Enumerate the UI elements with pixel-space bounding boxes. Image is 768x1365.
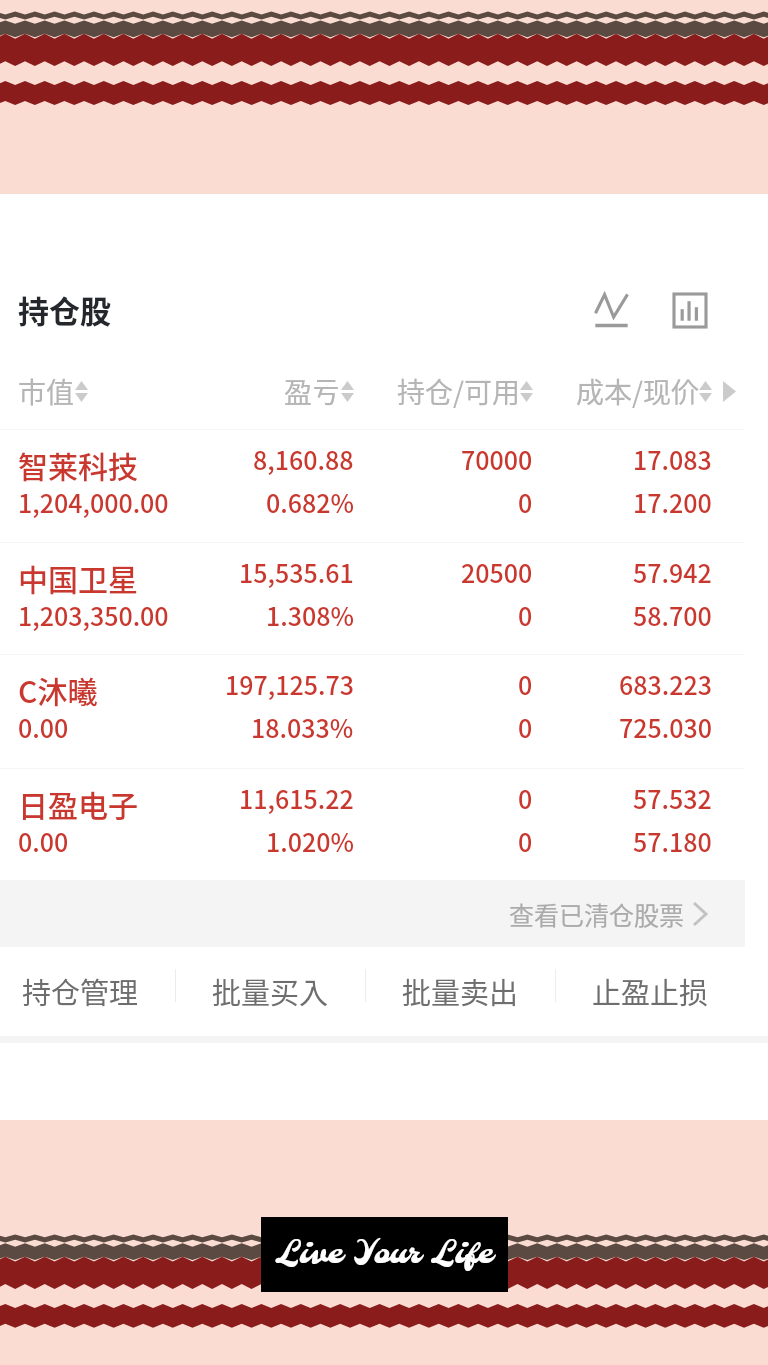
staticText: 1,203,350.00	[18, 597, 169, 633]
staticText: 1.020%	[266, 823, 354, 859]
staticText: 8,160.88	[253, 441, 354, 477]
staticText: 0	[518, 597, 533, 633]
staticText: 0.00	[18, 823, 69, 859]
staticText: 57.942	[633, 554, 712, 590]
staticText: 0	[518, 780, 533, 816]
staticText: 20500	[461, 554, 533, 590]
staticText: 57.180	[633, 823, 712, 859]
staticText: 智莱科技	[18, 443, 138, 486]
staticText: 0	[518, 709, 533, 745]
staticText: 725.030	[619, 709, 712, 745]
staticText: 查看已清仓股票	[509, 896, 685, 932]
staticText: 18.033%	[251, 709, 354, 745]
staticText: 批量买入	[212, 970, 329, 1012]
staticText: C沐曦	[18, 668, 98, 711]
button[interactable]: 日盈电子	[0, 768, 745, 881]
staticText: 197,125.73	[225, 666, 354, 702]
button[interactable]: 批量买入	[175, 946, 365, 1036]
staticText: 11,615.22	[239, 780, 354, 816]
staticText: 57.532	[633, 780, 712, 816]
staticText: 批量卖出	[402, 970, 519, 1012]
staticText: 持仓管理	[22, 970, 139, 1012]
staticText: 市值	[18, 371, 75, 412]
staticText: 58.700	[633, 597, 712, 633]
button[interactable]: 中国卫星	[0, 542, 745, 655]
button[interactable]: 查看已清仓股票	[0, 880, 745, 947]
button[interactable]: Bar chart	[657, 278, 722, 342]
button[interactable]: Trend chart	[579, 278, 644, 342]
staticText: 683.223	[619, 666, 712, 702]
staticText: 17.200	[633, 484, 712, 520]
button[interactable]: 止盈止损	[555, 946, 745, 1036]
staticText: 1.308%	[266, 597, 354, 633]
staticText: 0	[518, 823, 533, 859]
staticText: 持仓股	[18, 287, 111, 332]
button[interactable]: C沐曦	[0, 654, 745, 767]
staticText: 0	[518, 666, 533, 702]
staticText: 0	[518, 484, 533, 520]
button[interactable]: 批量卖出	[365, 946, 555, 1036]
button[interactable]: 持仓管理	[0, 946, 175, 1036]
button[interactable]: 智莱科技	[0, 429, 745, 542]
staticText: 0.00	[18, 709, 69, 745]
staticText: 15,535.61	[239, 554, 354, 590]
staticText: Live Your Life	[276, 1235, 493, 1274]
staticText: 1,204,000.00	[18, 484, 169, 520]
staticText: 成本/现价	[576, 371, 699, 412]
staticText: 持仓/可用	[397, 371, 520, 412]
staticText: 17.083	[633, 441, 712, 477]
staticText: 0.682%	[266, 484, 354, 520]
staticText: 止盈止损	[592, 970, 709, 1012]
staticText: 中国卫星	[18, 556, 138, 599]
staticText: 70000	[461, 441, 533, 477]
staticText: 日盈电子	[18, 782, 138, 825]
staticText: 盈亏	[284, 371, 341, 412]
